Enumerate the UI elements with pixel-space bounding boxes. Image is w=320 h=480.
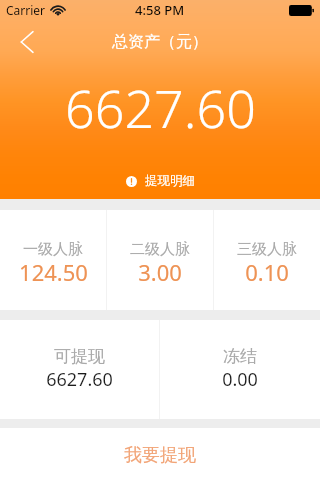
- staticText: 提现明细: [145, 173, 195, 189]
- button[interactable]: 可提现: [0, 320, 159, 419]
- staticText: 4:58 PM: [135, 1, 185, 19]
- button[interactable]: 一级人脉: [0, 210, 106, 310]
- button[interactable]: 二级人脉: [107, 210, 213, 310]
- button[interactable]: 我要提现: [0, 428, 320, 480]
- staticText: 总资产（元）: [112, 32, 208, 52]
- staticText: 可提现: [54, 346, 105, 367]
- staticText: Carrier: [6, 2, 46, 18]
- staticText: 124.50: [19, 257, 88, 287]
- button[interactable]: 冻结: [160, 320, 320, 419]
- staticText: 一级人脉: [23, 240, 83, 259]
- staticText: 0.10: [245, 257, 289, 287]
- staticText: 3.00: [138, 257, 182, 287]
- button[interactable]: Back: [0, 20, 44, 64]
- button[interactable]: 提现明细: [124, 171, 197, 191]
- staticText: 0.00: [222, 367, 258, 392]
- staticText: 我要提现: [124, 444, 196, 467]
- staticText: 6627.60: [65, 72, 256, 143]
- staticText: 冻结: [223, 346, 257, 367]
- staticText: 三级人脉: [237, 240, 297, 259]
- staticText: 二级人脉: [130, 240, 190, 259]
- button[interactable]: 三级人脉: [214, 210, 320, 310]
- staticText: 6627.60: [46, 367, 113, 392]
